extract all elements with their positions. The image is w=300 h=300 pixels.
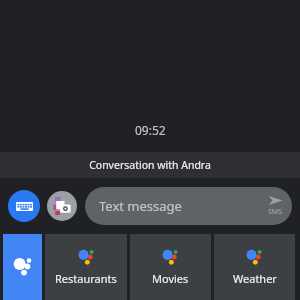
staticText: SMS: [268, 207, 283, 217]
button[interactable]: Conversation with Andra: [0, 152, 300, 178]
button[interactable]: Google Assistant: [3, 234, 42, 300]
button[interactable]: Send photo: [47, 191, 77, 221]
staticText: Restaurants: [55, 271, 117, 286]
staticText: Weather: [233, 271, 277, 286]
staticText: Text message: [99, 197, 182, 215]
button[interactable]: Text message: [85, 187, 292, 225]
staticText: Conversation with Andra: [89, 158, 211, 172]
button[interactable]: Movies: [130, 234, 211, 300]
staticText: 09:52: [135, 122, 166, 138]
button[interactable]: Keyboard: [8, 190, 40, 222]
button[interactable]: Restaurants: [45, 234, 127, 300]
button[interactable]: Weather: [214, 234, 295, 300]
staticText: Movies: [152, 271, 189, 286]
